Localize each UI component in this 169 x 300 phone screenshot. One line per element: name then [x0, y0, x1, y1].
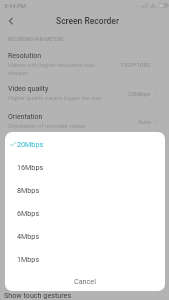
button[interactable]: Cancel	[5, 270, 165, 291]
staticText: Orientation	[8, 113, 43, 121]
button[interactable]: Back	[0, 12, 22, 29]
staticText: Higher quality means bigger file size	[8, 95, 102, 102]
staticText: 6Mbps	[17, 209, 40, 217]
staticText: 20Mbps	[17, 140, 44, 148]
staticText: Cancel	[74, 277, 96, 285]
staticText: Show touch gestures	[4, 291, 72, 299]
button[interactable]: Resolution	[0, 49, 169, 79]
staticText: Orientation of recorded videos	[8, 123, 86, 130]
staticText: Auto	[138, 118, 151, 125]
button[interactable]: 8Mbps	[5, 178, 165, 201]
staticText: Screen Recorder	[56, 16, 119, 26]
staticText: Videos with higher resolution look sharp…	[8, 62, 96, 76]
staticText: RECORDING PARAMETERS	[8, 37, 64, 42]
staticText: Resolution	[8, 52, 42, 60]
staticText: 3:44 PM	[4, 2, 27, 9]
staticText: Video quality	[8, 85, 49, 93]
staticText: 8Mbps	[17, 186, 40, 194]
button[interactable]: Video quality	[0, 79, 169, 107]
button[interactable]: Orientation	[0, 107, 169, 135]
button[interactable]: 6Mbps	[5, 201, 165, 224]
button[interactable]: 1Mbps	[5, 247, 165, 270]
staticText: 4Mbps	[17, 232, 40, 240]
button[interactable]: 16Mbps	[5, 155, 165, 178]
staticText: 16Mbps	[17, 163, 44, 171]
staticText: 1920*1080	[120, 61, 151, 68]
staticText: 1Mbps	[17, 255, 40, 263]
button[interactable]: 20Mbps	[5, 132, 165, 155]
button[interactable]: 4Mbps	[5, 224, 165, 247]
staticText: 20Mbps	[128, 90, 151, 97]
